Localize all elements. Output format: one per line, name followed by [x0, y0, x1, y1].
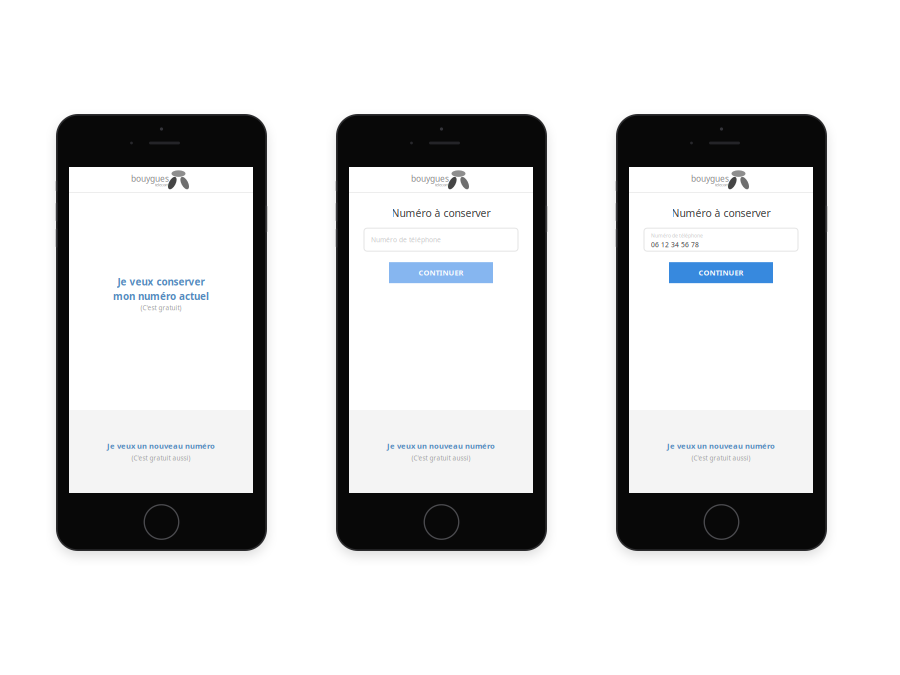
button[interactable]: Je veux conserver — [69, 275, 253, 312]
staticText: CONTINUER — [418, 268, 463, 278]
button[interactable]: Numéro de téléphone — [644, 228, 798, 251]
staticText: bouygues — [411, 173, 449, 184]
button[interactable]: CONTINUER — [389, 262, 493, 283]
staticText: Numéro à conserver — [671, 206, 770, 220]
button[interactable]: CONTINUER — [669, 262, 773, 283]
staticText: Numéro à conserver — [391, 206, 490, 220]
staticText: (C'est gratuit aussi) — [131, 454, 190, 462]
button[interactable]: Je veux un nouveau numéro — [69, 410, 253, 493]
staticText: Je veux un nouveau numéro — [667, 441, 775, 451]
button[interactable]: Je veux un nouveau numéro — [629, 410, 813, 493]
staticText: (C'est gratuit) — [140, 303, 181, 312]
staticText: CONTINUER — [698, 268, 743, 278]
staticText: Je veux un nouveau numéro — [107, 441, 215, 451]
staticText: 06 12 34 56 78 — [651, 240, 699, 249]
staticText: telecom — [715, 182, 729, 187]
staticText: bouygues — [131, 173, 169, 184]
button[interactable]: Numéro de téléphone — [364, 228, 518, 251]
staticText: (C'est gratuit aussi) — [691, 454, 750, 462]
staticText: (C'est gratuit aussi) — [411, 454, 470, 462]
staticText: mon numéro actuel — [113, 289, 209, 303]
staticText: Numéro de téléphone — [371, 235, 441, 244]
staticText: bouygues — [691, 173, 729, 184]
staticText: Je veux un nouveau numéro — [387, 441, 495, 451]
staticText: Numéro de téléphone — [651, 232, 703, 239]
staticText: telecom — [155, 182, 169, 187]
staticText: telecom — [435, 182, 449, 187]
button[interactable]: Je veux un nouveau numéro — [349, 410, 533, 493]
staticText: Je veux conserver — [117, 275, 204, 288]
